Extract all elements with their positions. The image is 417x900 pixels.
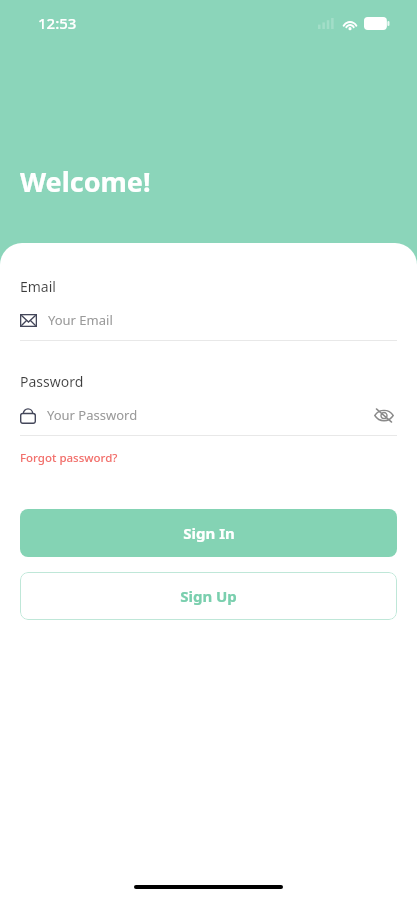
button[interactable]: Sign In <box>20 509 397 557</box>
staticText: Your Email <box>48 311 113 329</box>
button[interactable]: Show password <box>371 403 397 427</box>
staticText: Email <box>20 277 56 296</box>
button[interactable]: Your Email <box>20 309 397 331</box>
staticText: Forgot password? <box>20 450 118 466</box>
staticText: Sign In <box>183 523 235 543</box>
staticText: Your Password <box>47 406 138 424</box>
staticText: 12:53 <box>38 13 77 33</box>
staticText: Password <box>20 372 84 391</box>
staticText: Welcome! <box>20 163 151 200</box>
button[interactable]: Forgot password? <box>20 450 118 466</box>
staticText: Sign Up <box>180 586 237 606</box>
button[interactable]: Sign Up <box>20 572 397 620</box>
button[interactable]: Your Password <box>20 406 371 424</box>
